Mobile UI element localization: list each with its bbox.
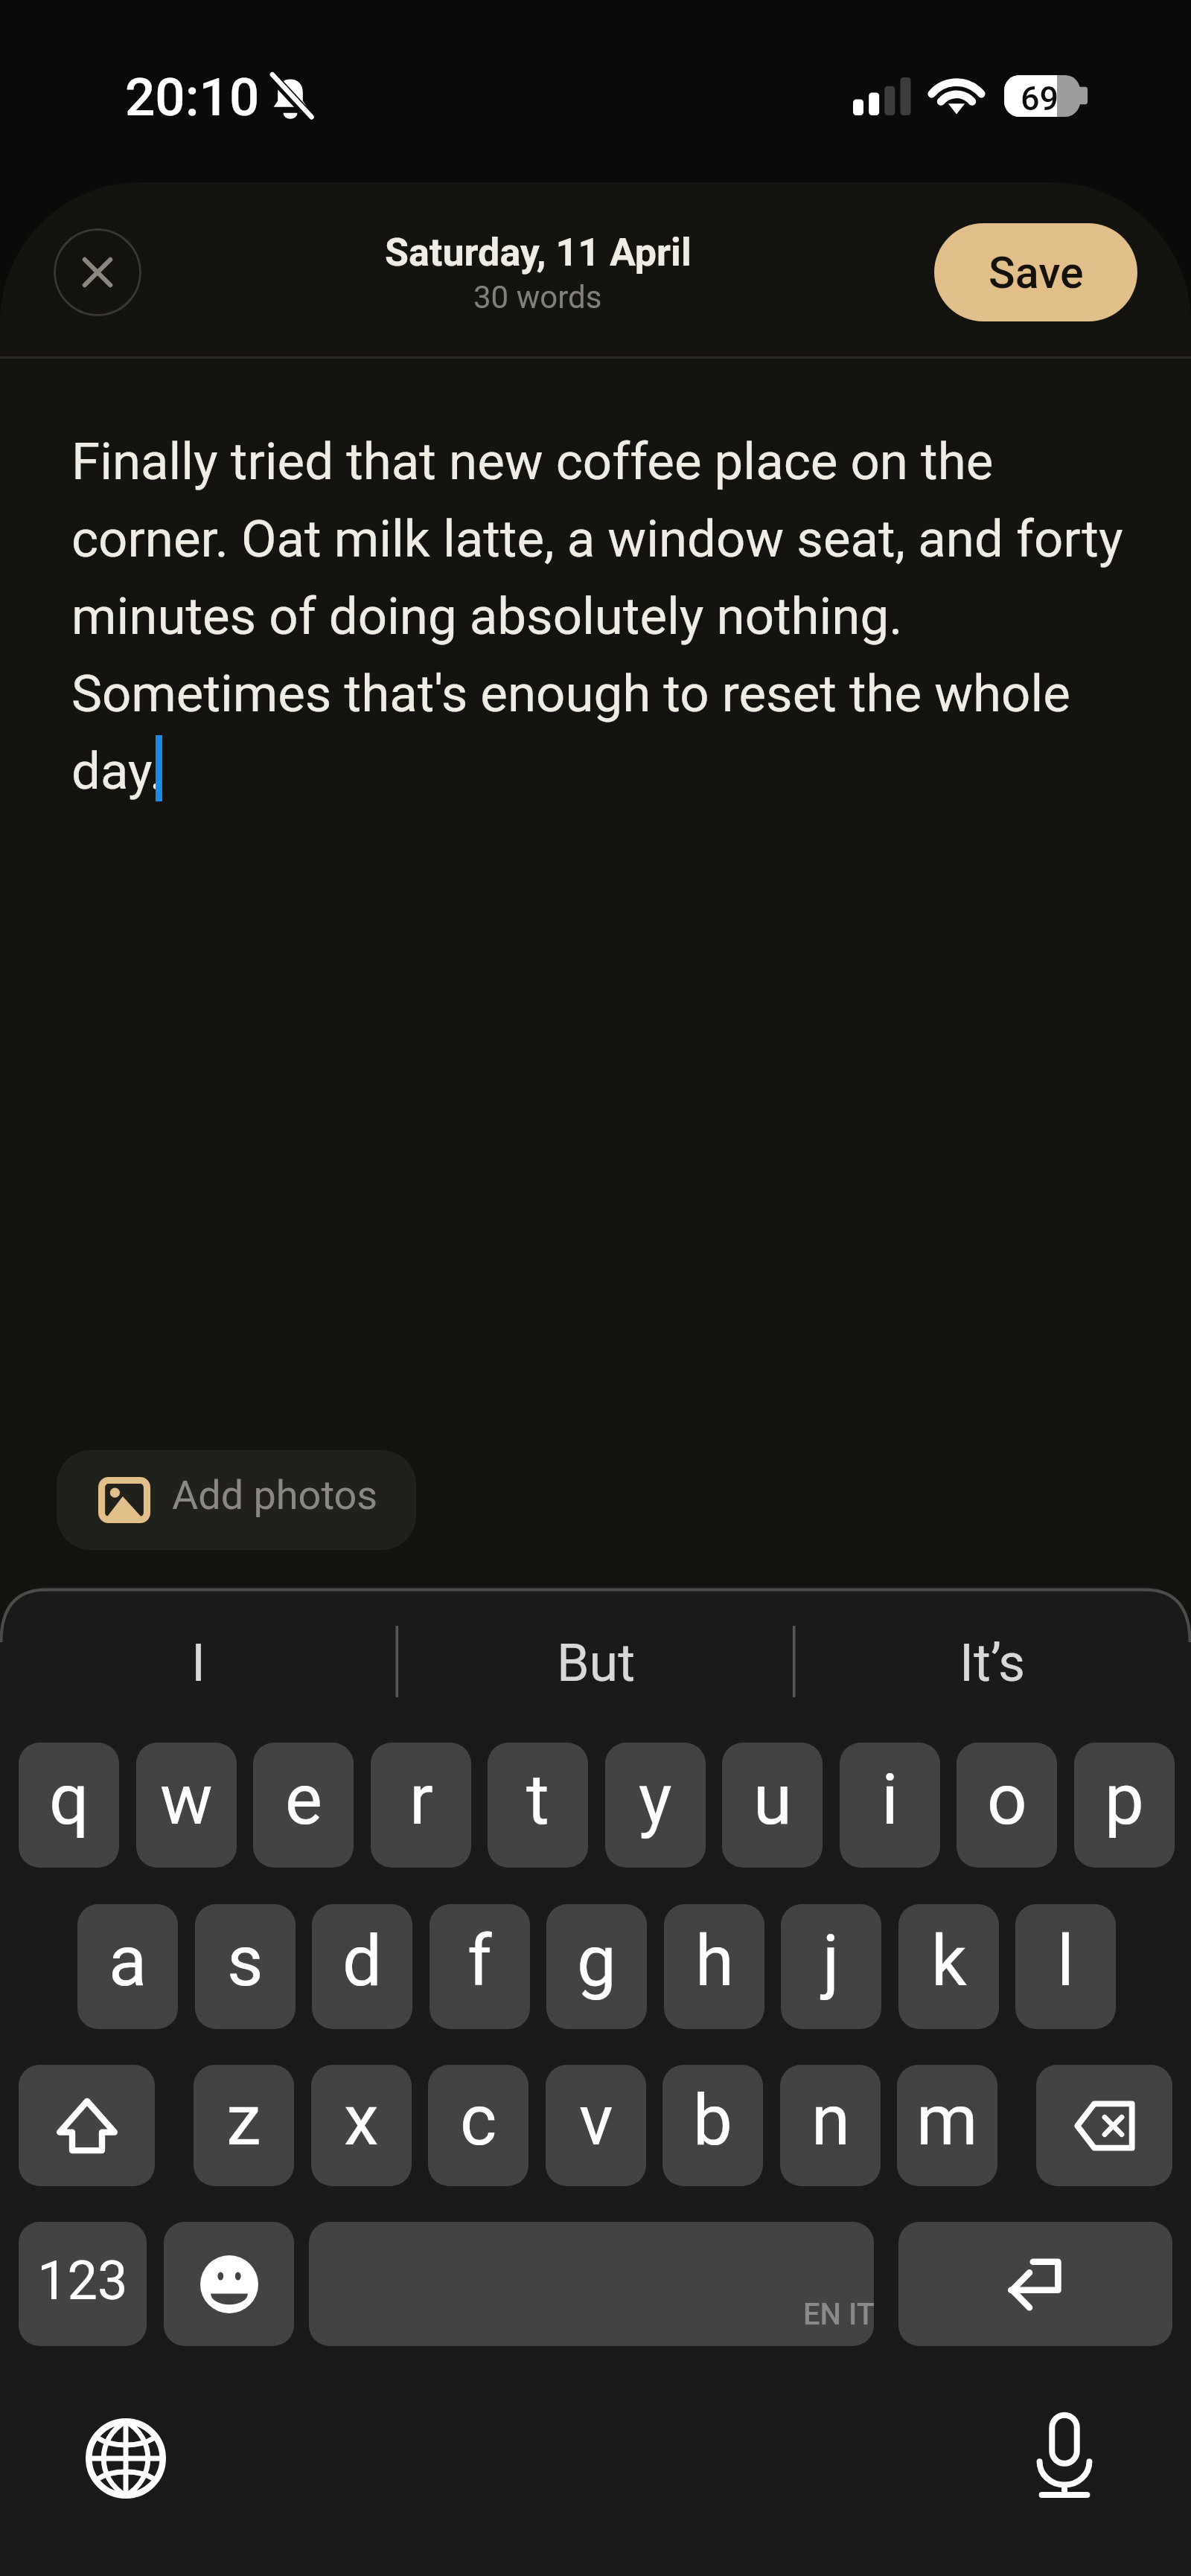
- staticText: e: [285, 1759, 322, 1841]
- staticText: k: [931, 1920, 967, 2002]
- staticText: x: [344, 2080, 379, 2162]
- button[interactable]: m: [897, 2065, 997, 2186]
- staticText: Save: [989, 247, 1084, 298]
- button[interactable]: d: [312, 1904, 412, 2029]
- staticText: a: [109, 1920, 147, 2002]
- button[interactable]: b: [662, 2065, 763, 2186]
- button[interactable]: i: [840, 1743, 940, 1868]
- button[interactable]: Space: [309, 2222, 874, 2346]
- staticText: j: [823, 1920, 840, 2002]
- button[interactable]: k: [898, 1904, 999, 2029]
- staticText: It’s: [959, 1633, 1026, 1694]
- button[interactable]: l: [1015, 1904, 1116, 2029]
- staticText: w: [160, 1759, 213, 1841]
- button[interactable]: w: [136, 1743, 237, 1868]
- button[interactable]: q: [19, 1743, 119, 1868]
- staticText: 30 words: [473, 279, 602, 315]
- button[interactable]: u: [722, 1743, 823, 1868]
- staticText: t: [526, 1759, 549, 1841]
- staticText: c: [460, 2080, 497, 2162]
- staticText: EN IT: [803, 2297, 874, 2332]
- staticText: l: [1057, 1920, 1074, 2002]
- staticText: g: [577, 1920, 616, 2002]
- button[interactable]: c: [428, 2065, 529, 2186]
- staticText: But: [557, 1633, 636, 1694]
- button[interactable]: o: [957, 1743, 1057, 1868]
- staticText: I: [191, 1633, 206, 1694]
- staticText: f: [467, 1920, 492, 2002]
- button[interactable]: Voice input: [983, 2373, 1146, 2537]
- button[interactable]: g: [546, 1904, 647, 2029]
- staticText: d: [342, 1920, 383, 2002]
- staticText: o: [987, 1759, 1027, 1841]
- staticText: 123: [37, 2249, 128, 2312]
- button[interactable]: Add photos: [57, 1450, 416, 1550]
- staticText: q: [49, 1759, 89, 1841]
- button[interactable]: 123: [19, 2222, 147, 2346]
- staticText: b: [693, 2080, 732, 2162]
- staticText: s: [227, 1920, 264, 2002]
- button[interactable]: v: [546, 2065, 646, 2186]
- button[interactable]: Save: [934, 223, 1137, 321]
- staticText: z: [226, 2080, 261, 2162]
- button[interactable]: n: [780, 2065, 881, 2186]
- staticText: y: [639, 1759, 672, 1841]
- staticText: 69: [1021, 79, 1059, 118]
- button[interactable]: But: [397, 1607, 794, 1719]
- button[interactable]: f: [430, 1904, 530, 2029]
- button[interactable]: y: [605, 1743, 706, 1868]
- button[interactable]: Emoji: [164, 2222, 294, 2346]
- staticText: p: [1105, 1759, 1144, 1841]
- button[interactable]: a: [77, 1904, 178, 2029]
- button[interactable]: It’s: [794, 1607, 1191, 1719]
- button[interactable]: r: [371, 1743, 471, 1868]
- staticText: h: [695, 1920, 734, 2002]
- button[interactable]: Shift: [19, 2065, 155, 2186]
- button[interactable]: e: [253, 1743, 354, 1868]
- button[interactable]: h: [664, 1904, 764, 2029]
- button[interactable]: x: [311, 2065, 412, 2186]
- staticText: n: [811, 2080, 850, 2162]
- staticText: r: [409, 1759, 433, 1841]
- button[interactable]: Change language: [44, 2377, 208, 2540]
- button[interactable]: Close: [54, 228, 141, 316]
- button[interactable]: t: [488, 1743, 588, 1868]
- button[interactable]: p: [1074, 1743, 1175, 1868]
- staticText: u: [753, 1759, 792, 1841]
- button[interactable]: s: [195, 1904, 296, 2029]
- button[interactable]: Backspace: [1036, 2065, 1172, 2186]
- staticText: v: [579, 2080, 613, 2162]
- staticText: Saturday, 11 April: [385, 230, 692, 275]
- button[interactable]: z: [194, 2065, 294, 2186]
- staticText: i: [881, 1759, 898, 1841]
- staticText: Finally tried that new coffee place on t…: [71, 432, 1128, 801]
- button[interactable]: I: [0, 1607, 397, 1719]
- staticText: Add photos: [172, 1472, 378, 1519]
- button[interactable]: j: [781, 1904, 881, 2029]
- button[interactable]: Enter: [898, 2222, 1172, 2346]
- staticText: 20:10: [125, 66, 260, 128]
- staticText: m: [916, 2080, 978, 2162]
